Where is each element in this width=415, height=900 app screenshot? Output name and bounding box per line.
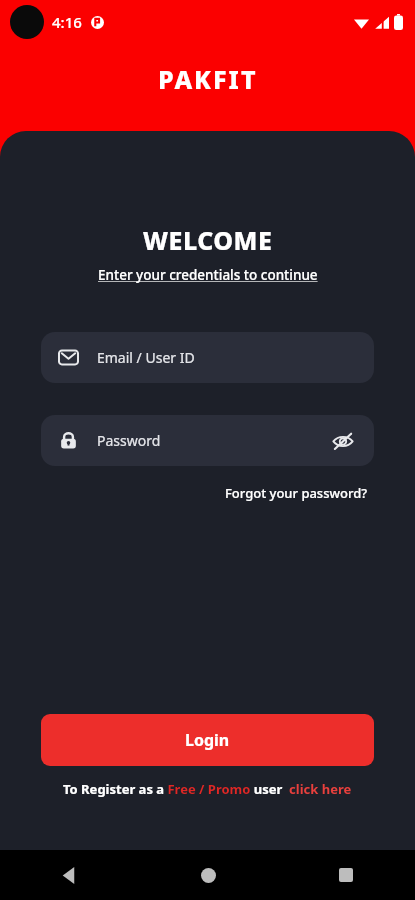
staticText: Email / User ID [97,348,195,367]
staticText: PAKFIT [158,62,258,96]
button[interactable]: Recent apps [277,850,415,900]
button[interactable]: Home [139,850,277,900]
button[interactable]: To Register as a Free / Promo user click… [63,780,352,798]
staticText: 4:16 [52,12,82,32]
button[interactable]: Back [0,850,139,900]
button[interactable]: Login [41,714,374,766]
staticText: Enter your credentials to continue [98,266,318,284]
staticText: WELCOME [143,223,273,257]
staticText: Forgot your password? [225,484,368,502]
button[interactable]: Show password [328,426,358,456]
button[interactable]: Email / User ID [41,332,374,383]
button[interactable]: Password [41,415,374,466]
staticText: Password [97,431,328,450]
staticText: Login [185,729,230,751]
button[interactable]: Forgot your password? [223,482,370,504]
staticText: To Register as a Free / Promo user click… [63,780,352,798]
